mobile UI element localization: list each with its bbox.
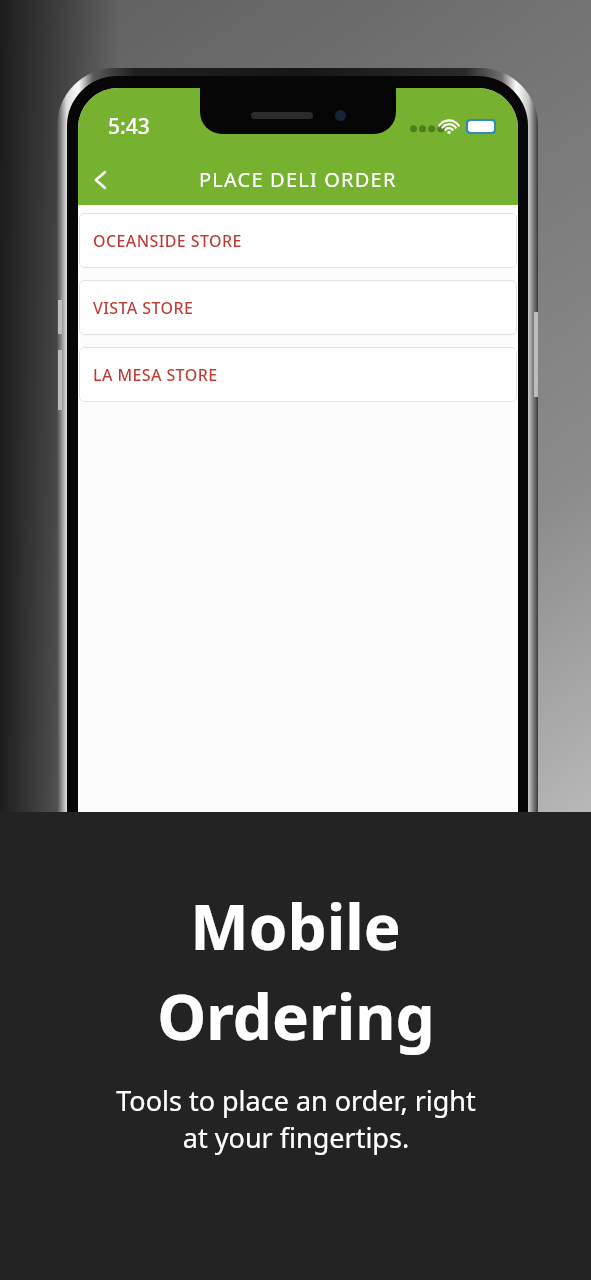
staticText: Tools to place an order, right at your f… bbox=[116, 1082, 476, 1156]
staticText: Ordering bbox=[157, 974, 435, 1058]
button[interactable]: OCEANSIDE STORE bbox=[79, 213, 517, 268]
staticText: OCEANSIDE STORE bbox=[93, 230, 242, 252]
staticText: VISTA STORE bbox=[93, 297, 194, 319]
button[interactable]: Back bbox=[78, 157, 124, 203]
button[interactable]: LA MESA STORE bbox=[79, 347, 517, 402]
staticText: PLACE DELI ORDER bbox=[199, 166, 397, 193]
staticText: Mobile bbox=[190, 884, 401, 968]
staticText: 5:43 bbox=[108, 112, 150, 141]
button[interactable]: VISTA STORE bbox=[79, 280, 517, 335]
staticText: LA MESA STORE bbox=[93, 364, 218, 386]
